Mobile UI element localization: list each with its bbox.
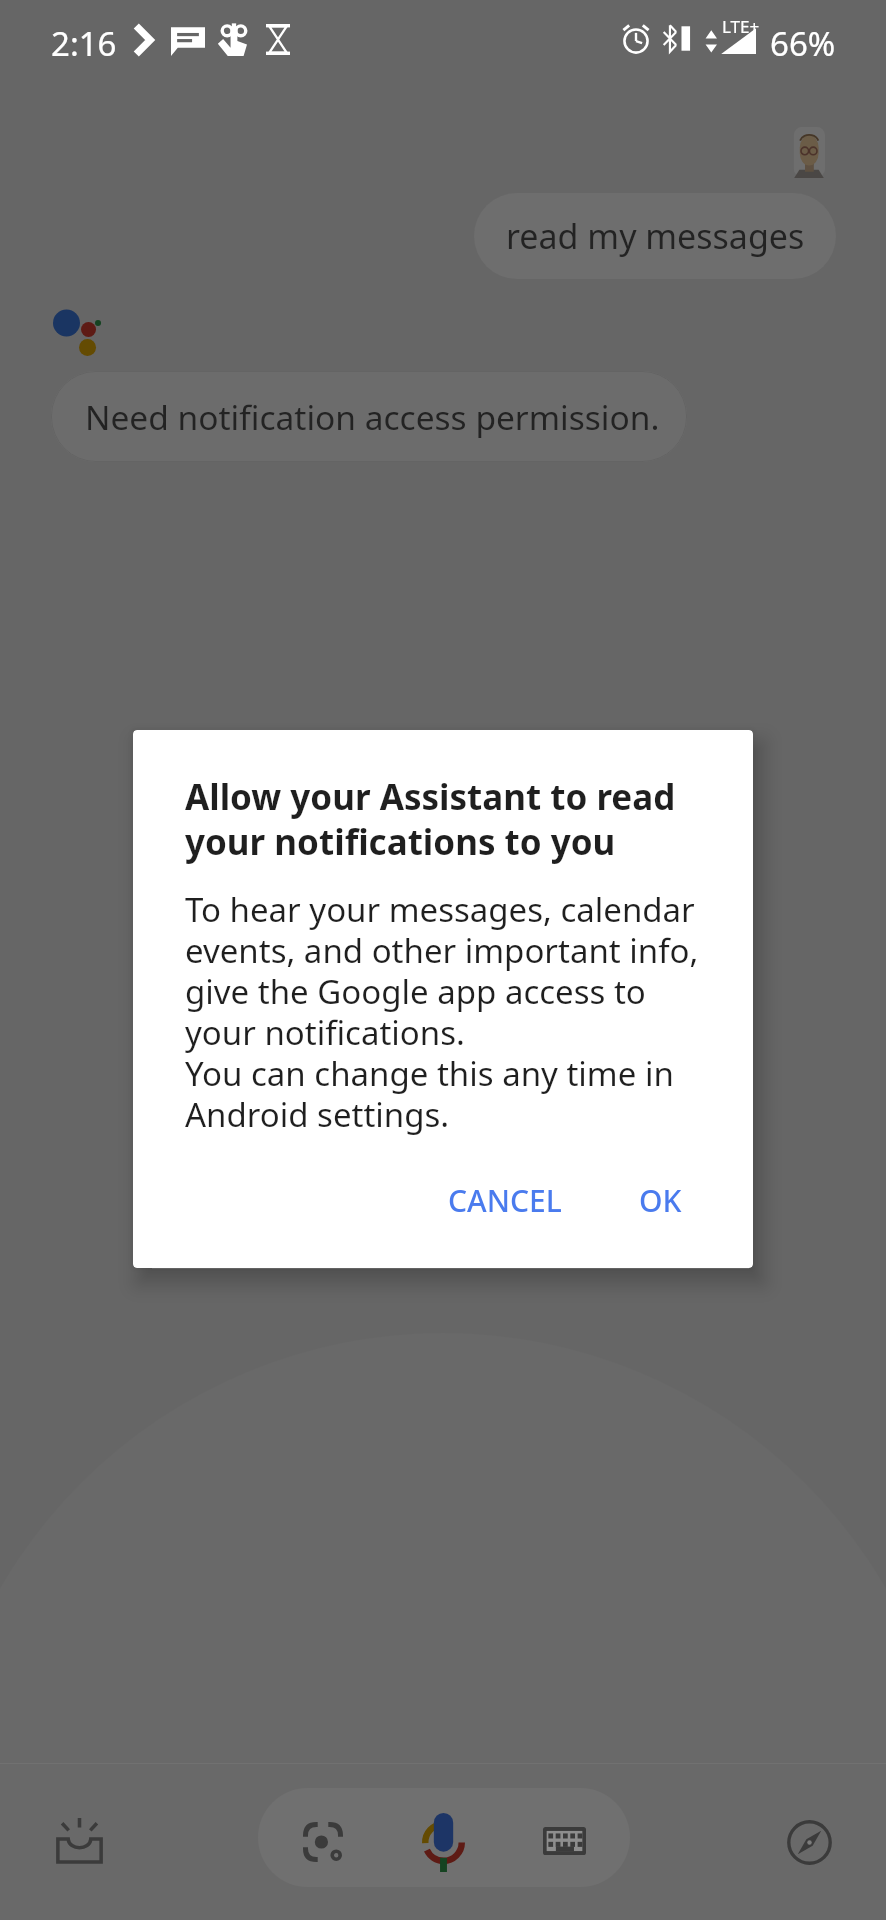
- staticText: LTE+: [722, 15, 760, 38]
- staticText: Need notification access permission.: [85, 394, 660, 440]
- button[interactable]: Google Lens: [279, 1798, 367, 1886]
- button[interactable]: CANCEL: [432, 1164, 578, 1237]
- button[interactable]: Explore: [765, 1798, 853, 1886]
- staticText: OK: [639, 1180, 682, 1221]
- button[interactable]: OK: [623, 1164, 698, 1237]
- staticText: 2:16: [51, 21, 117, 66]
- button[interactable]: Snapshot: [35, 1796, 123, 1884]
- button[interactable]: Keyboard: [520, 1797, 608, 1885]
- staticText: read my messages: [506, 213, 805, 259]
- staticText: CANCEL: [448, 1180, 562, 1221]
- button[interactable]: Voice search: [399, 1795, 487, 1887]
- staticText: 66%: [770, 21, 836, 66]
- staticText: Allow your Assistant to read your notifi…: [185, 773, 676, 866]
- staticText: To hear your messages, calendar events, …: [185, 887, 699, 1137]
